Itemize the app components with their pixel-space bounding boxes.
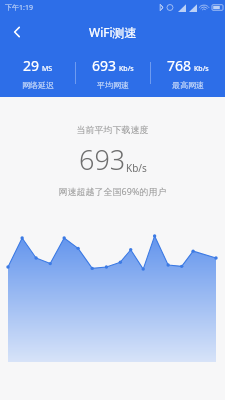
staticText: 下午1:19 xyxy=(5,3,33,13)
staticText: 693 xyxy=(79,141,126,178)
button[interactable]: 768 xyxy=(151,56,225,90)
staticText: 平均网速 xyxy=(97,80,129,90)
staticText: 693 xyxy=(92,56,117,75)
staticText: Kb/s xyxy=(119,64,134,74)
staticText: Kb/s xyxy=(194,64,209,74)
staticText: 最高网速 xyxy=(172,80,204,90)
staticText: MS xyxy=(42,64,53,74)
staticText: 29 xyxy=(23,56,40,75)
button[interactable]: 29 xyxy=(0,56,75,90)
staticText: 网络延迟 xyxy=(22,80,54,90)
staticText: 网速超越了全国69%的用户 xyxy=(0,185,225,197)
button[interactable]: Back xyxy=(0,15,34,48)
staticText: 768 xyxy=(167,56,192,75)
staticText: Kb/s xyxy=(126,161,147,175)
button[interactable]: 693 xyxy=(76,56,150,90)
staticText: 当前平均下载速度 xyxy=(0,124,225,135)
staticText: WiFi测速 xyxy=(89,24,137,40)
